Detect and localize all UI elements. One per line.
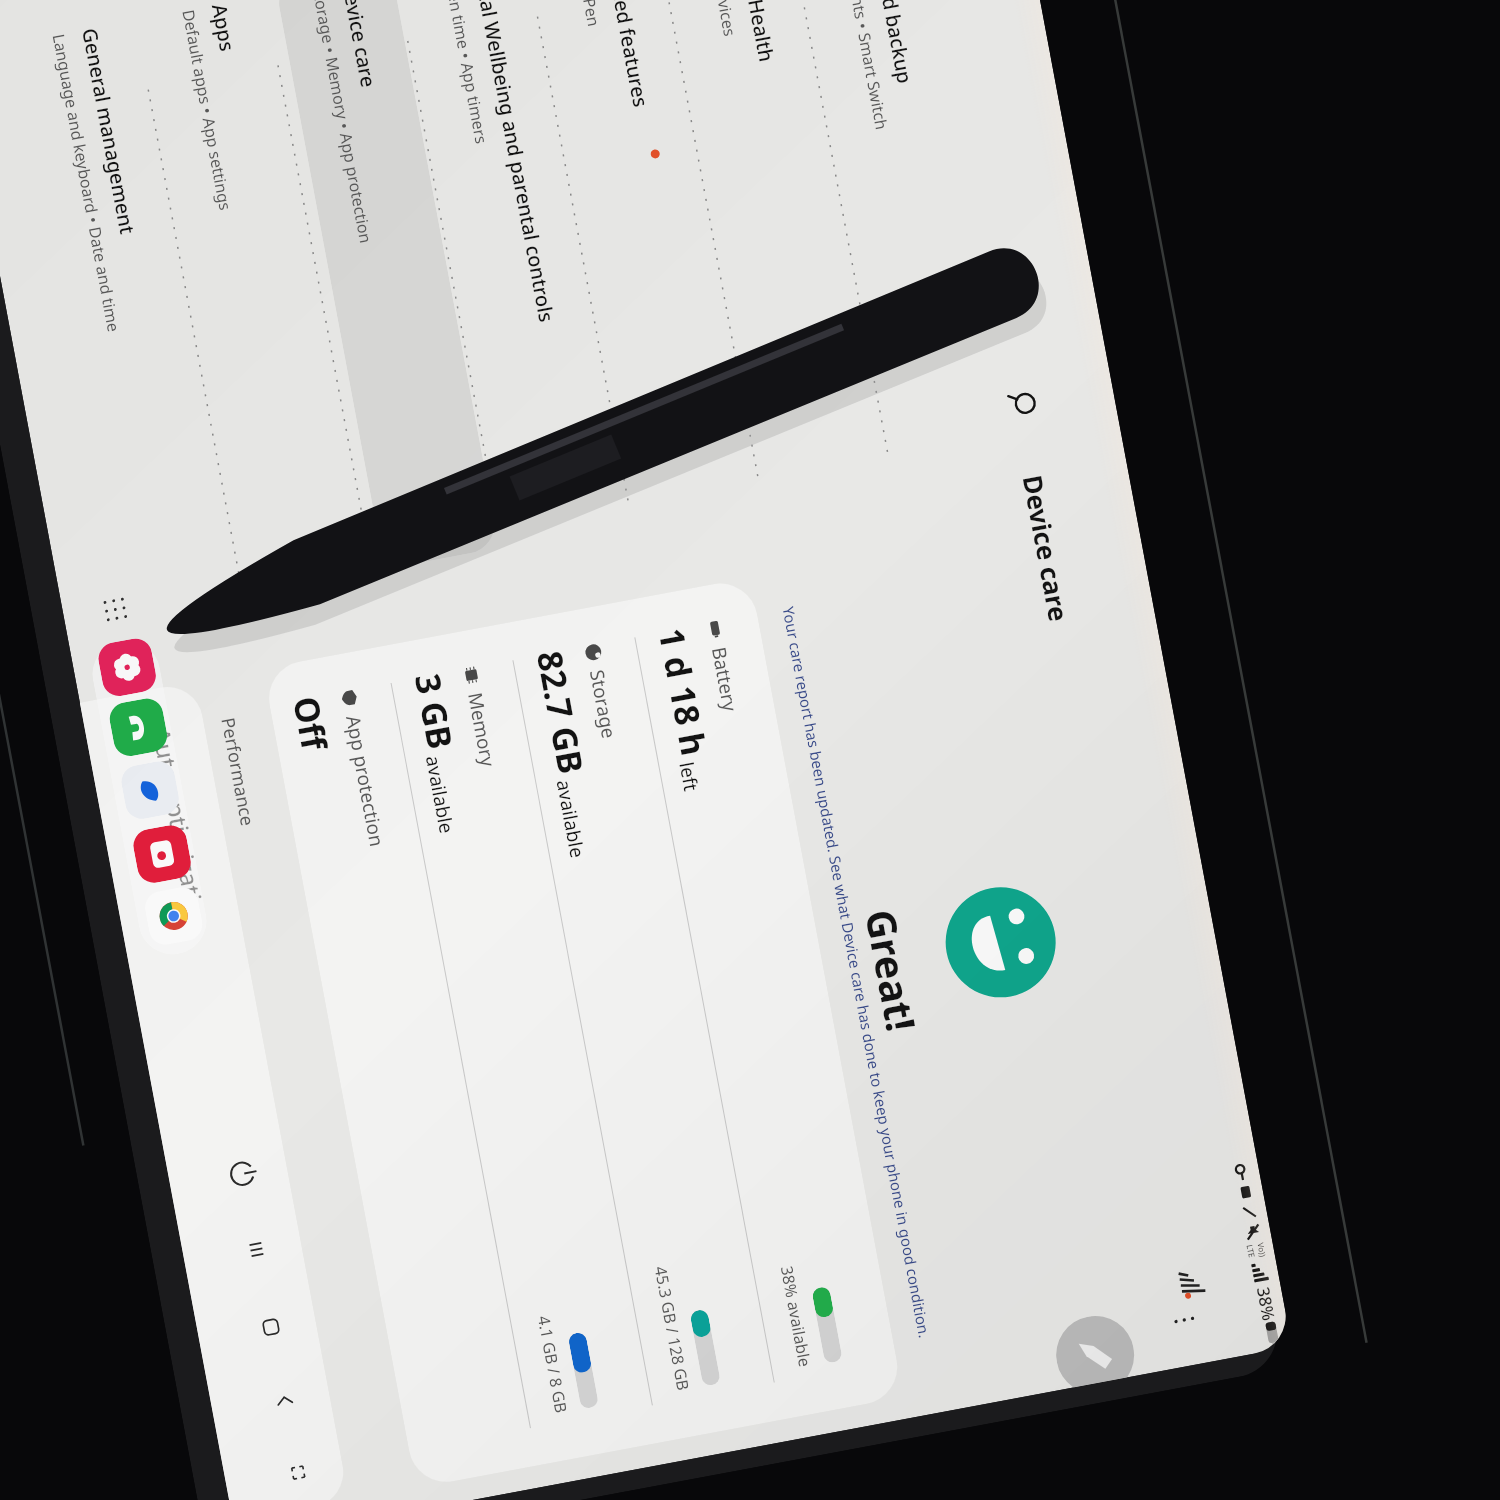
staticText: left — [673, 760, 704, 794]
button[interactable]: App — [119, 759, 182, 822]
staticText: LTE — [1245, 1244, 1258, 1258]
staticText: Performance — [215, 715, 260, 828]
staticText: Your care report has been updated. See w… — [778, 605, 935, 1340]
button[interactable]: App — [131, 823, 194, 886]
button[interactable]: Advanced features — [534, 0, 759, 521]
button[interactable]: Apps — [83, 577, 148, 642]
staticText: 3 GB — [405, 670, 464, 753]
button[interactable]: Auto optimization — [80, 681, 349, 1500]
button[interactable]: Battery — [628, 577, 904, 1420]
button[interactable]: App — [96, 636, 159, 699]
staticText: App protection — [340, 713, 390, 849]
staticText: Device care — [1016, 472, 1077, 624]
button[interactable]: Recents — [220, 1213, 293, 1286]
staticText: Auto optimization — [145, 725, 215, 934]
staticText: Advanced features — [595, 0, 655, 110]
button[interactable]: App — [142, 884, 205, 947]
staticText: Apps — [206, 2, 241, 54]
staticText: 82.7 GB — [527, 647, 595, 777]
staticText: Labs • S Pen — [567, 0, 605, 28]
button[interactable]: Power — [206, 1138, 278, 1210]
button[interactable]: Screenshot — [262, 1436, 334, 1500]
button[interactable]: Storage — [506, 600, 782, 1443]
button[interactable]: More options — [1157, 1293, 1211, 1347]
button[interactable]: Accounts and backup — [793, 0, 1018, 472]
staticText: available — [551, 778, 591, 860]
staticText: Storage • Memory • App protection — [307, 0, 377, 245]
staticText: 4.1 GB / 8 GB — [533, 1314, 572, 1415]
staticText: Device care — [336, 0, 382, 89]
staticText: Digital Wellbeing and parental controls — [465, 0, 561, 325]
staticText: Samsung Health — [725, 0, 780, 65]
staticText: Great! — [854, 905, 930, 1036]
staticText: Off — [283, 693, 338, 754]
staticText: Default apps • App settings — [177, 8, 237, 212]
button[interactable]: Device care — [274, 0, 500, 569]
staticText: Vo)) — [1255, 1242, 1269, 1258]
staticText: Language and keyboard • Date and time — [48, 32, 125, 334]
staticText: General management — [76, 26, 141, 236]
button[interactable]: App — [107, 696, 170, 759]
button[interactable]: General management — [15, 7, 240, 618]
button[interactable]: Back — [249, 1365, 321, 1437]
button[interactable]: Home — [235, 1291, 307, 1363]
staticText: 45.3 GB / 128 GB — [650, 1264, 694, 1392]
button[interactable]: App protection — [263, 646, 538, 1488]
staticText: 38% — [1252, 1285, 1281, 1322]
staticText: 1 d 18 h — [649, 624, 718, 760]
button[interactable]: Memory — [385, 623, 660, 1465]
staticText: 38% available — [776, 1264, 816, 1369]
staticText: available — [420, 753, 460, 836]
button[interactable]: Search — [989, 372, 1055, 438]
staticText: Storage — [584, 668, 622, 741]
staticText: Manage accounts • Smart Switch — [826, 0, 893, 132]
staticText: Memory — [462, 690, 501, 769]
button[interactable]: S Pen — [1050, 1309, 1139, 1390]
staticText: Accounts and backup — [855, 0, 919, 86]
button[interactable]: Apps — [144, 0, 370, 594]
staticText: Screen time • App timers — [437, 0, 493, 146]
staticText: Activity • Devices — [696, 0, 741, 39]
button[interactable]: Samsung Health — [663, 0, 889, 496]
staticText: Battery — [706, 645, 743, 713]
button[interactable]: Digital Wellbeing and parental controls — [404, 0, 629, 545]
